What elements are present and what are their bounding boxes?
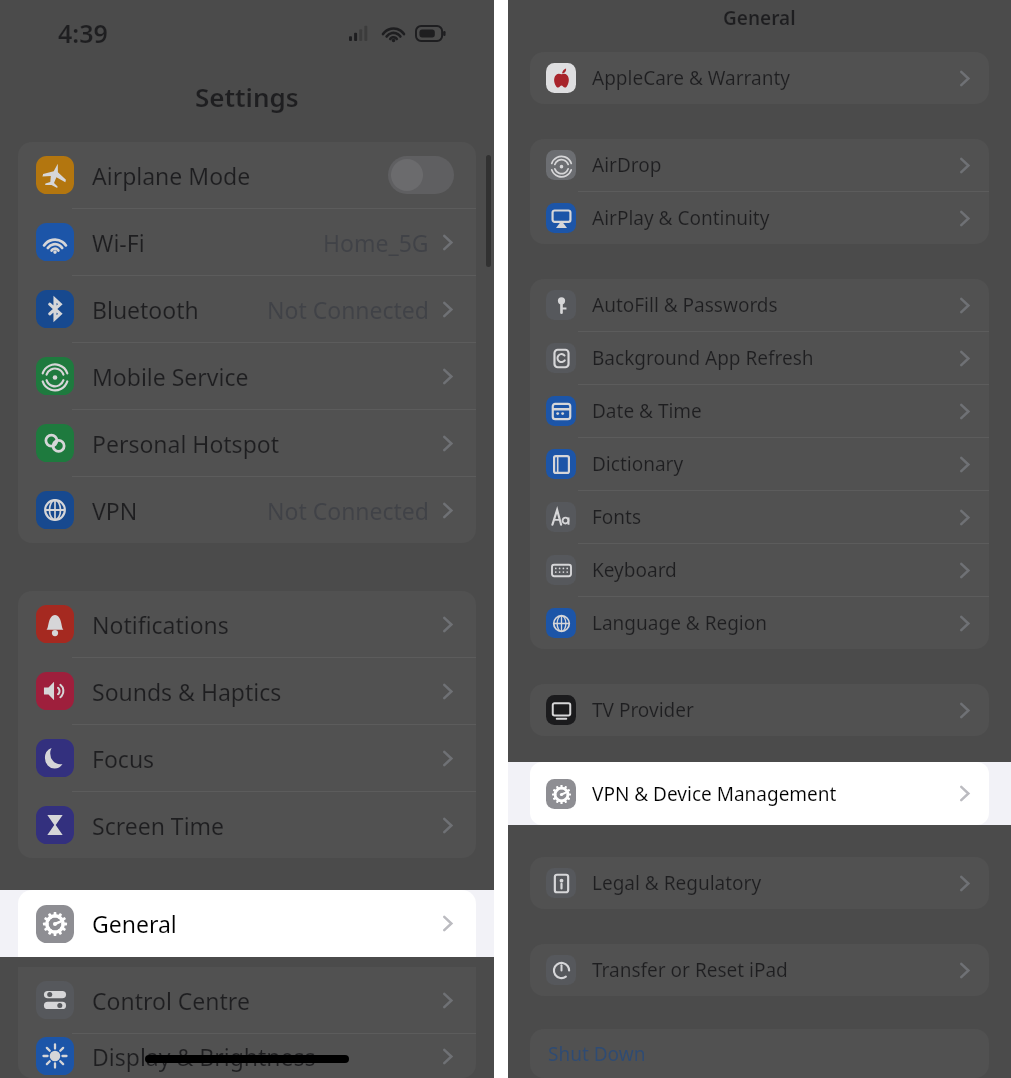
button[interactable]: AirDrop	[530, 139, 989, 191]
staticText: General	[723, 5, 796, 31]
button[interactable]: Wi-Fi	[18, 209, 476, 275]
staticText: VPN & Device Management	[592, 781, 837, 807]
button[interactable]: Display & Brightness	[18, 1034, 476, 1078]
staticText: Not Connected	[267, 495, 429, 526]
staticText: Bluetooth	[92, 294, 199, 325]
button[interactable]: Sounds & Haptics	[18, 658, 476, 724]
button[interactable]: TV Provider	[530, 684, 989, 736]
button[interactable]: Keyboard	[530, 544, 989, 596]
button[interactable]: Screen Time	[18, 792, 476, 858]
staticText: Home_5G	[323, 227, 429, 258]
staticText: TV Provider	[592, 697, 694, 723]
staticText: Screen Time	[92, 810, 225, 841]
staticText: AirPlay & Continuity	[592, 205, 770, 231]
staticText: Not Connected	[267, 294, 429, 325]
button[interactable]: Fonts	[530, 491, 989, 543]
button[interactable]: AutoFill & Passwords	[530, 279, 989, 331]
button[interactable]: AppleCare & Warranty	[530, 52, 989, 104]
staticText: Date & Time	[592, 398, 702, 424]
button[interactable]: General	[18, 890, 476, 957]
staticText: Dictionary	[592, 451, 684, 477]
staticText: Background App Refresh	[592, 345, 814, 371]
staticText: Sounds & Haptics	[92, 676, 282, 707]
button[interactable]: Legal & Regulatory	[530, 857, 989, 909]
staticText: 4:39	[58, 16, 108, 50]
staticText: Shut Down	[548, 1041, 646, 1067]
staticText: Legal & Regulatory	[592, 870, 762, 896]
staticText: Focus	[92, 743, 155, 774]
button[interactable]: Personal Hotspot	[18, 410, 476, 476]
staticText: AirDrop	[592, 152, 662, 178]
staticText: Notifications	[92, 609, 229, 640]
button[interactable]: Transfer or Reset iPad	[530, 944, 989, 996]
staticText: Personal Hotspot	[92, 428, 279, 459]
staticText: Fonts	[592, 504, 642, 530]
staticText: AutoFill & Passwords	[592, 292, 778, 318]
button[interactable]: Notifications	[18, 591, 476, 657]
button[interactable]: VPN	[18, 477, 476, 543]
staticText: Language & Region	[592, 610, 767, 636]
button[interactable]: VPN & Device Management	[530, 762, 989, 825]
staticText: AppleCare & Warranty	[592, 65, 790, 91]
staticText: Display & Brightness	[92, 1041, 316, 1072]
staticText: Mobile Service	[92, 361, 249, 392]
staticText: Transfer or Reset iPad	[592, 957, 788, 983]
other: Airplane Mode toggle	[388, 156, 454, 194]
button[interactable]: Bluetooth	[18, 276, 476, 342]
button[interactable]: Date & Time	[530, 385, 989, 437]
button[interactable]: Airplane Mode	[18, 142, 476, 208]
button[interactable]: Shut Down	[530, 1029, 989, 1078]
staticText: Wi-Fi	[92, 227, 145, 258]
button[interactable]: Language & Region	[530, 597, 989, 649]
staticText: Airplane Mode	[92, 160, 251, 191]
button[interactable]: Focus	[18, 725, 476, 791]
staticText: Keyboard	[592, 557, 677, 583]
staticText: General	[92, 908, 177, 939]
staticText: VPN	[92, 495, 138, 526]
button[interactable]: Dictionary	[530, 438, 989, 490]
button[interactable]: Mobile Service	[18, 343, 476, 409]
staticText: Settings	[195, 79, 299, 114]
staticText: Control Centre	[92, 985, 250, 1016]
button[interactable]: Background App Refresh	[530, 332, 989, 384]
button[interactable]: Control Centre	[18, 967, 476, 1033]
button[interactable]: AirPlay & Continuity	[530, 192, 989, 244]
